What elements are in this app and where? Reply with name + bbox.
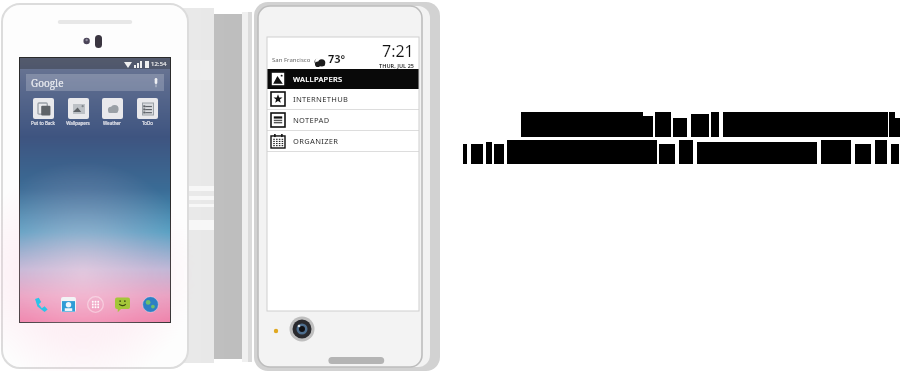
staticText: THUR, JUL 25 <box>379 62 414 69</box>
staticText: 7:21 <box>382 40 414 62</box>
button[interactable]: Google <box>26 74 164 91</box>
button[interactable]: Phone <box>29 293 51 315</box>
staticText: WALLPAPERS <box>293 74 343 84</box>
staticText: Put to Back <box>31 120 55 126</box>
button[interactable]: Camera <box>57 293 79 315</box>
staticText: NOTEPAD <box>293 115 330 125</box>
staticText: San Francisco <box>272 56 311 64</box>
button[interactable]: Browser <box>139 293 161 315</box>
button[interactable]: Weather <box>96 98 128 126</box>
staticText: 73° <box>328 51 346 66</box>
staticText: Wallpapers <box>66 120 90 126</box>
button[interactable]: ORGANIZER <box>267 131 419 151</box>
button[interactable]: Messaging <box>111 293 133 315</box>
staticText: INTERNETHUB <box>293 94 349 104</box>
staticText: Google <box>31 76 64 90</box>
button[interactable]: WALLPAPERS <box>267 69 419 89</box>
staticText: Weather <box>103 120 121 126</box>
button[interactable]: ToDo <box>131 98 163 126</box>
staticText: 12:54 <box>151 60 167 68</box>
staticText: ORGANIZER <box>293 136 339 146</box>
button[interactable]: NOTEPAD <box>267 110 419 130</box>
button[interactable]: All apps <box>84 293 106 315</box>
staticText: ToDo <box>142 120 153 126</box>
button[interactable]: Put to Back <box>27 98 59 126</box>
button[interactable]: Wallpapers <box>62 98 94 126</box>
button[interactable]: INTERNETHUB <box>267 89 419 109</box>
